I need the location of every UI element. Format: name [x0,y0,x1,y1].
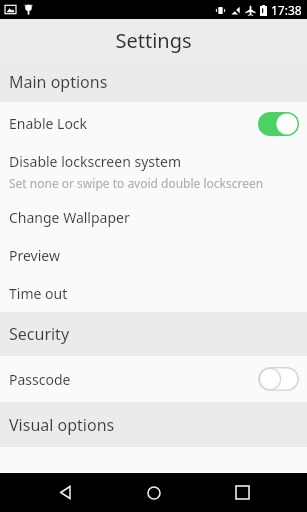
staticText: Passcode [9,370,258,389]
staticText: Change Wallpaper [9,208,130,227]
staticText: Security [9,323,70,345]
button[interactable]: Time out [0,274,307,312]
staticText: Settings [115,27,192,54]
button[interactable]: Home [130,473,178,512]
staticText: Preview [9,246,60,265]
staticText: 17:38 [271,2,302,18]
button[interactable]: Disable lockscreen system [0,145,307,198]
staticText: Visual options [9,414,115,436]
button[interactable]: Enable Lock [0,102,307,145]
staticText: Disable lockscreen system [9,152,182,171]
button[interactable]: Toggle on [258,112,299,136]
button[interactable]: Back [41,473,89,512]
staticText: Time out [9,284,68,303]
button[interactable]: Recent apps [218,473,266,512]
button[interactable]: Passcode [0,356,307,402]
staticText: Enable Lock [9,114,258,133]
button[interactable]: Change Wallpaper [0,198,307,236]
button[interactable]: Preview [0,236,307,274]
staticText: Main options [9,71,108,93]
staticText: Set none or swipe to avoid double locksc… [9,175,264,191]
button[interactable]: Toggle off [258,367,299,391]
